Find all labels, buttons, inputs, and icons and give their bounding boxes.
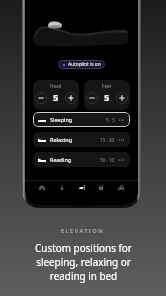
button[interactable]: Decrease — [35, 92, 47, 104]
staticText: Sleeping — [50, 116, 73, 123]
button[interactable]: Devices — [95, 181, 107, 193]
staticText: Feet — [102, 83, 112, 89]
button[interactable]: Increase — [65, 92, 77, 104]
staticText: Relaxing — [50, 136, 73, 143]
button[interactable]: Insights — [115, 181, 127, 193]
staticText: Reading — [50, 156, 72, 163]
button[interactable]: Relaxing — [33, 132, 130, 147]
staticText: Head — [50, 83, 62, 89]
staticText: 5 — [53, 91, 59, 104]
staticText: 15 · 20 — [100, 137, 115, 143]
button[interactable]: Decrease — [86, 92, 98, 104]
button[interactable]: Bed positions — [76, 181, 88, 193]
button[interactable]: Reading — [33, 152, 130, 167]
staticText: Custom positions for sleeping, relaxing … — [35, 241, 132, 283]
button[interactable]: Sleep — [56, 181, 68, 193]
staticText: ELEVATION — [61, 227, 105, 235]
button[interactable]: Increase — [116, 92, 128, 104]
button[interactable]: Home — [36, 181, 48, 193]
button[interactable]: Sleeping — [33, 112, 130, 127]
staticText: 5 — [104, 91, 110, 104]
staticText: Autopilot is on — [68, 61, 101, 68]
staticText: 5 · 5 — [106, 117, 115, 123]
button[interactable]: Autopilot is on — [58, 60, 105, 69]
staticText: 30 · 10 — [100, 157, 115, 163]
